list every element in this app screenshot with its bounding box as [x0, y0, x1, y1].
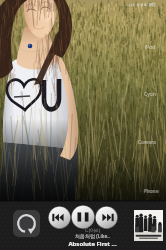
button[interactable]: Camera: [132, 139, 162, 146]
staticText: Camera: [132, 139, 162, 146]
staticText: Absolute First ...: [68, 240, 117, 248]
staticText: Cyon: [135, 91, 165, 98]
staticText: 처음처럼 (Like..: [75, 233, 110, 240]
button[interactable]: Pause: [71, 205, 95, 229]
staticText: 디어리: [85, 227, 100, 233]
button[interactable]: Repeat: [13, 210, 40, 237]
button[interactable]: Next: [95, 206, 118, 229]
button[interactable]: Previous: [48, 206, 71, 229]
button[interactable]: iPod: [135, 44, 165, 51]
staticText: Phone: [136, 188, 166, 195]
button[interactable]: Phone: [136, 188, 166, 195]
staticText: iPod: [135, 44, 165, 51]
button[interactable]: Cyon: [135, 91, 165, 98]
button[interactable]: Album art: [134, 210, 163, 241]
